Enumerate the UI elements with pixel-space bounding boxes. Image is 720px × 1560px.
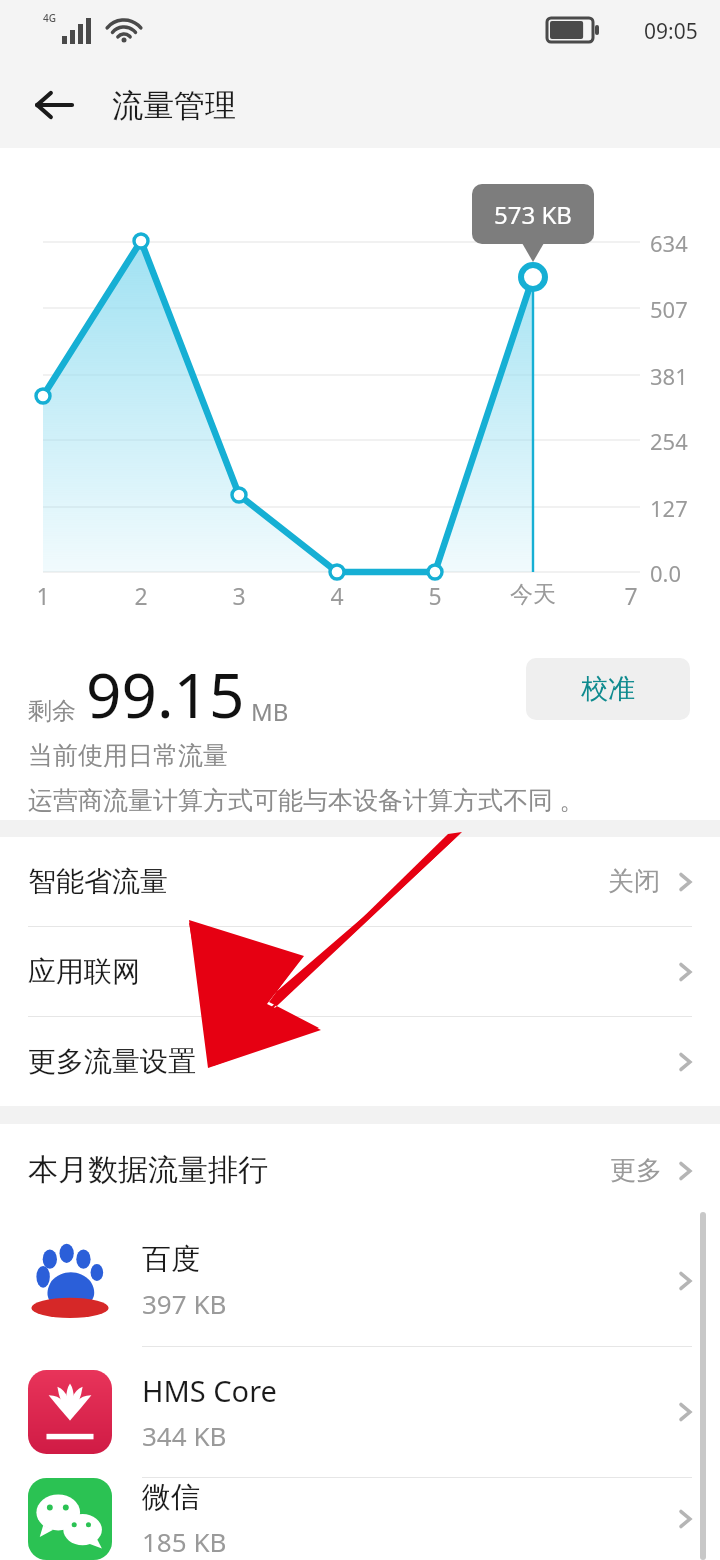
staticText: 381: [650, 361, 688, 391]
staticText: 应用联网: [28, 954, 140, 989]
staticText: 634: [650, 228, 688, 258]
staticText: 3: [229, 580, 249, 611]
button[interactable]: 更多流量设置: [0, 1017, 720, 1106]
staticText: 2: [131, 580, 151, 611]
staticText: 本月数据流量排行: [28, 1151, 268, 1189]
staticText: 507: [650, 294, 688, 324]
staticText: HMS Core: [142, 1371, 277, 1410]
staticText: 09:05: [644, 17, 698, 46]
staticText: 344 KB: [142, 1418, 227, 1453]
staticText: 0.0: [650, 558, 682, 588]
staticText: 185 KB: [142, 1524, 227, 1559]
staticText: 5: [425, 580, 445, 611]
staticText: 397 KB: [142, 1286, 227, 1321]
staticText: 7: [621, 580, 641, 611]
staticText: 智能省流量: [28, 864, 168, 899]
button[interactable]: Back: [22, 73, 86, 137]
button[interactable]: 校准: [526, 658, 690, 720]
staticText: 99.15: [86, 652, 245, 736]
staticText: 1: [33, 580, 53, 611]
staticText: 当前使用日常流量: [28, 740, 228, 771]
staticText: 校准: [581, 672, 635, 706]
staticText: 剩余: [28, 696, 76, 726]
button[interactable]: 百度: [0, 1216, 720, 1346]
button[interactable]: 应用联网: [0, 927, 720, 1016]
staticText: 573 KB: [494, 198, 572, 231]
staticText: 今天: [503, 580, 563, 609]
staticText: 更多: [610, 1154, 662, 1187]
button[interactable]: 更多: [610, 1154, 696, 1187]
staticText: 运营商流量计算方式可能与本设备计算方式不同 。: [28, 782, 585, 816]
staticText: 百度: [142, 1241, 200, 1278]
staticText: 4: [327, 580, 347, 611]
staticText: 254: [650, 426, 688, 456]
staticText: 流量管理: [112, 86, 236, 125]
staticText: 127: [650, 493, 688, 523]
staticText: 微信: [142, 1479, 200, 1516]
staticText: 关闭: [608, 865, 660, 898]
button[interactable]: HMS Core: [0, 1347, 720, 1477]
button[interactable]: 智能省流量: [0, 837, 720, 926]
staticText: 更多流量设置: [28, 1044, 196, 1079]
button[interactable]: 微信: [0, 1478, 720, 1560]
staticText: 4G: [43, 11, 56, 25]
staticText: MB: [251, 695, 289, 728]
